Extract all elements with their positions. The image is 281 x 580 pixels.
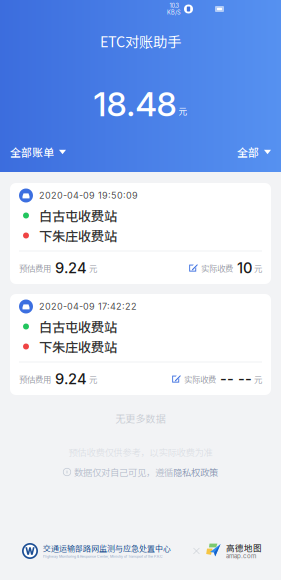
button[interactable]: 全部账单: [0, 139, 76, 165]
staticText: 元: [89, 262, 97, 274]
staticText: 元: [178, 104, 187, 117]
staticText: 白古屯收费站: [39, 317, 117, 336]
staticText: 18.48: [93, 84, 176, 124]
staticText: amap.com: [226, 552, 256, 560]
staticText: KB/S: [167, 9, 181, 16]
staticText: 隐私权政策: [173, 465, 218, 479]
staticText: 10.3: [169, 2, 178, 9]
button[interactable]: 全部: [227, 139, 281, 165]
staticText: 数据仅对自己可见，遵循: [74, 465, 173, 479]
staticText: Highway Monitoring & Response Center, Mi…: [43, 554, 163, 559]
staticText: 预估费用: [19, 262, 51, 274]
staticText: 高德地图: [226, 541, 262, 554]
staticText: 预估费用: [19, 373, 51, 385]
staticText: 全部账单: [10, 144, 54, 160]
staticText: 交通运输部路网监测与应急处置中心: [43, 542, 171, 554]
button[interactable]: 数据仅对自己可见，遵循: [63, 466, 218, 478]
staticText: 无更多数据: [115, 411, 165, 425]
staticText: 元: [254, 262, 262, 274]
staticText: 下朱庄收费站: [39, 337, 117, 356]
staticText: 实际收费: [184, 373, 216, 385]
staticText: 下朱庄收费站: [39, 226, 117, 245]
staticText: 9.24: [55, 259, 87, 277]
staticText: 2020-04-09 19:50:09: [39, 190, 138, 201]
staticText: 元: [89, 373, 97, 385]
staticText: 全部: [237, 144, 259, 160]
staticText: 9.24: [55, 370, 87, 388]
staticText: ETC对账助手: [100, 31, 181, 51]
staticText: -- --: [220, 370, 252, 388]
staticText: 10: [237, 259, 252, 277]
staticText: 实际收费: [201, 262, 233, 274]
staticText: 白古屯收费站: [39, 206, 117, 225]
staticText: 元: [254, 373, 262, 385]
staticText: 2020-04-09 17:42:22: [39, 301, 137, 312]
staticText: 预估收费仅供参考，以实际收费为准: [68, 445, 212, 459]
